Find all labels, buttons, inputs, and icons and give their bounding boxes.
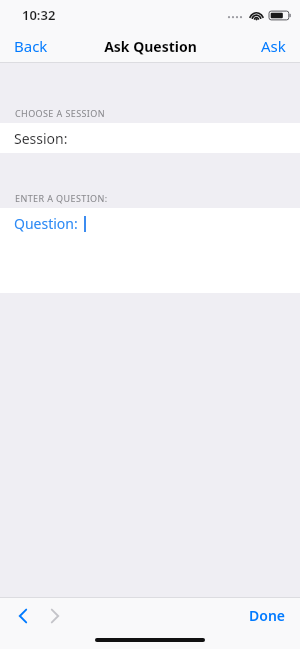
staticText: Back [14, 36, 48, 56]
staticText: Done [249, 606, 286, 625]
button[interactable]: Session: [0, 123, 300, 153]
button[interactable]: Ask [247, 30, 300, 62]
staticText: Question: [14, 214, 78, 233]
button[interactable]: Back [0, 30, 62, 62]
staticText: ENTER A QUESTION: [15, 192, 108, 204]
staticText: Session: [14, 129, 68, 148]
staticText: Ask [261, 36, 286, 56]
staticText: 10:32 [22, 6, 56, 24]
button[interactable]: Next field [42, 603, 68, 629]
button[interactable]: Question: [0, 208, 300, 293]
staticText: Ask Question [104, 37, 197, 56]
button[interactable]: Previous field [10, 603, 36, 629]
button[interactable]: Done [235, 600, 300, 631]
staticText: CHOOSE A SESSION [15, 107, 105, 119]
